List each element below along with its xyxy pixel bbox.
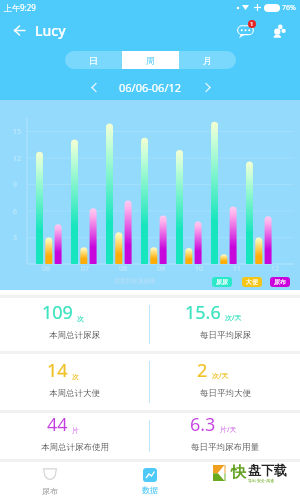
- staticText: 11: [233, 264, 242, 274]
- staticText: 1: [250, 20, 254, 28]
- staticText: 9: [13, 180, 18, 190]
- staticText: 06/06-06/12: [119, 80, 182, 95]
- staticText: 12: [13, 154, 22, 164]
- staticText: 月: [203, 55, 212, 66]
- staticText: 07: [81, 264, 90, 274]
- staticText: 次: [77, 314, 84, 323]
- staticText: 次/天: [212, 371, 229, 381]
- button[interactable]: Next week: [196, 76, 218, 98]
- staticText: 日: [89, 55, 98, 66]
- staticText: 盘下载: [248, 462, 287, 478]
- staticText: 6: [13, 207, 18, 217]
- button[interactable]: Back: [8, 19, 30, 41]
- staticText: 44: [47, 412, 68, 437]
- staticText: 上午9:29: [4, 2, 36, 13]
- staticText: 数据: [142, 485, 158, 495]
- staticText: 尿尿: [216, 278, 228, 286]
- button[interactable]: 日: [65, 51, 122, 69]
- staticText: 本周总计尿尿: [49, 330, 100, 341]
- staticText: 12: [271, 264, 280, 274]
- staticText: 2: [197, 358, 208, 383]
- button[interactable]: 数据: [100, 462, 200, 500]
- staticText: 每日平均尿布用量: [191, 442, 259, 453]
- button[interactable]: 周: [122, 51, 179, 69]
- button[interactable]: 月: [179, 51, 236, 69]
- staticText: 深度和更换频率: [114, 277, 156, 285]
- staticText: 06: [42, 264, 51, 274]
- staticText: 片/天: [220, 425, 237, 435]
- staticText: 次/天: [225, 313, 242, 323]
- staticText: 6.3: [190, 412, 216, 437]
- staticText: 大便: [246, 278, 258, 286]
- staticText: 3: [13, 233, 18, 243]
- staticText: 14: [47, 358, 68, 383]
- button[interactable]: 尿布: [0, 462, 100, 500]
- staticText: Lucy: [35, 21, 66, 40]
- staticText: 次: [72, 372, 79, 381]
- staticText: 片: [72, 426, 79, 435]
- staticText: 导出·安全·高速: [248, 478, 275, 483]
- staticText: 09: [157, 264, 166, 274]
- staticText: 周: [146, 55, 155, 66]
- button[interactable]: Family members: [266, 18, 290, 42]
- staticText: 本周总计尿布使用: [41, 442, 109, 453]
- staticText: 109: [42, 300, 73, 325]
- button[interactable]: 14: [0, 354, 149, 410]
- staticText: 15.6: [185, 300, 221, 325]
- button[interactable]: Messages: [233, 18, 257, 42]
- staticText: 76%: [282, 3, 296, 13]
- staticText: 15: [13, 127, 22, 137]
- button[interactable]: 109: [0, 298, 149, 351]
- button[interactable]: 6.3: [150, 413, 300, 459]
- staticText: 尿布: [42, 486, 58, 496]
- staticText: 每日平均尿尿: [200, 330, 251, 341]
- staticText: 尿布: [274, 278, 286, 286]
- staticText: 08: [119, 264, 128, 274]
- staticText: 10: [195, 264, 204, 274]
- staticText: 每日平均大便: [200, 388, 251, 399]
- button[interactable]: 44: [0, 413, 149, 459]
- staticText: 本周总计大便: [49, 388, 100, 399]
- button[interactable]: 15.6: [150, 298, 300, 351]
- button[interactable]: Previous week: [83, 76, 105, 98]
- staticText: 快: [231, 463, 246, 482]
- button[interactable]: 2: [150, 354, 300, 410]
